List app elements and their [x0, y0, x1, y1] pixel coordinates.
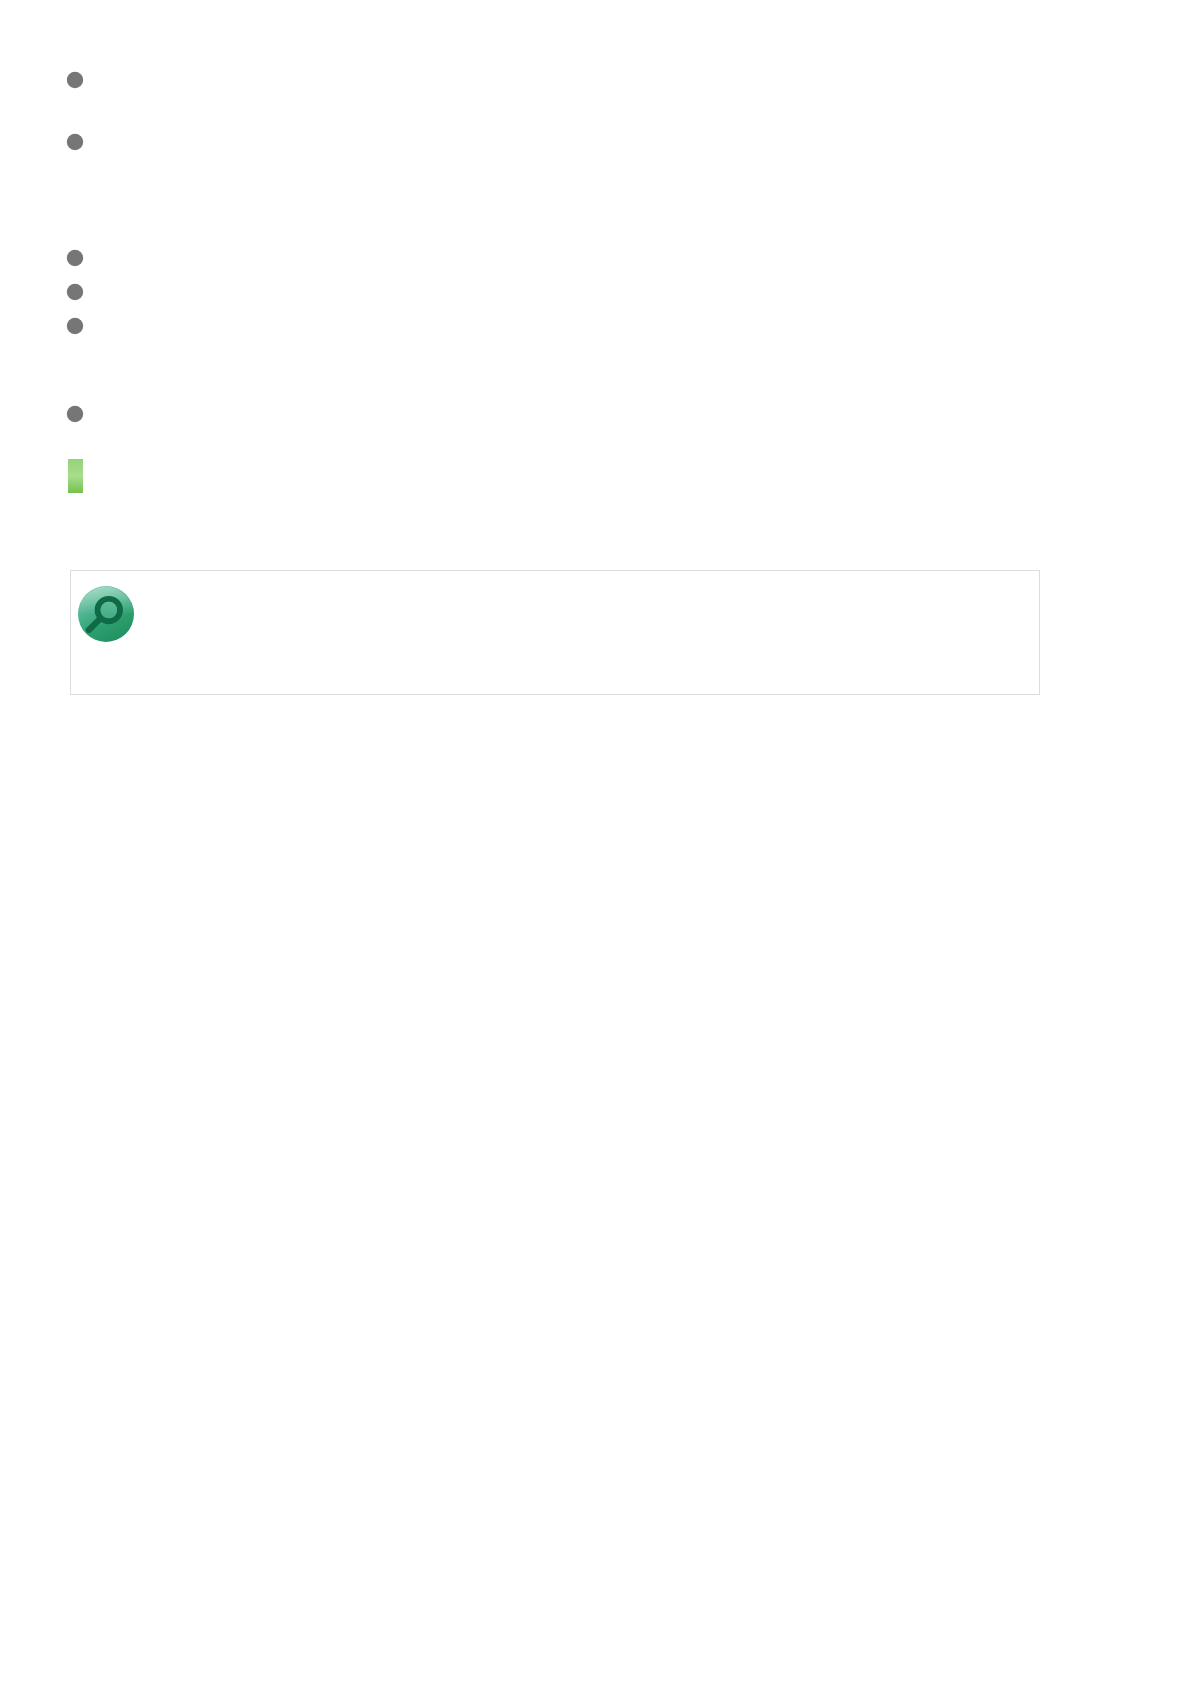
button[interactable]: Search	[70, 570, 1040, 695]
button[interactable]: Search	[78, 586, 134, 642]
